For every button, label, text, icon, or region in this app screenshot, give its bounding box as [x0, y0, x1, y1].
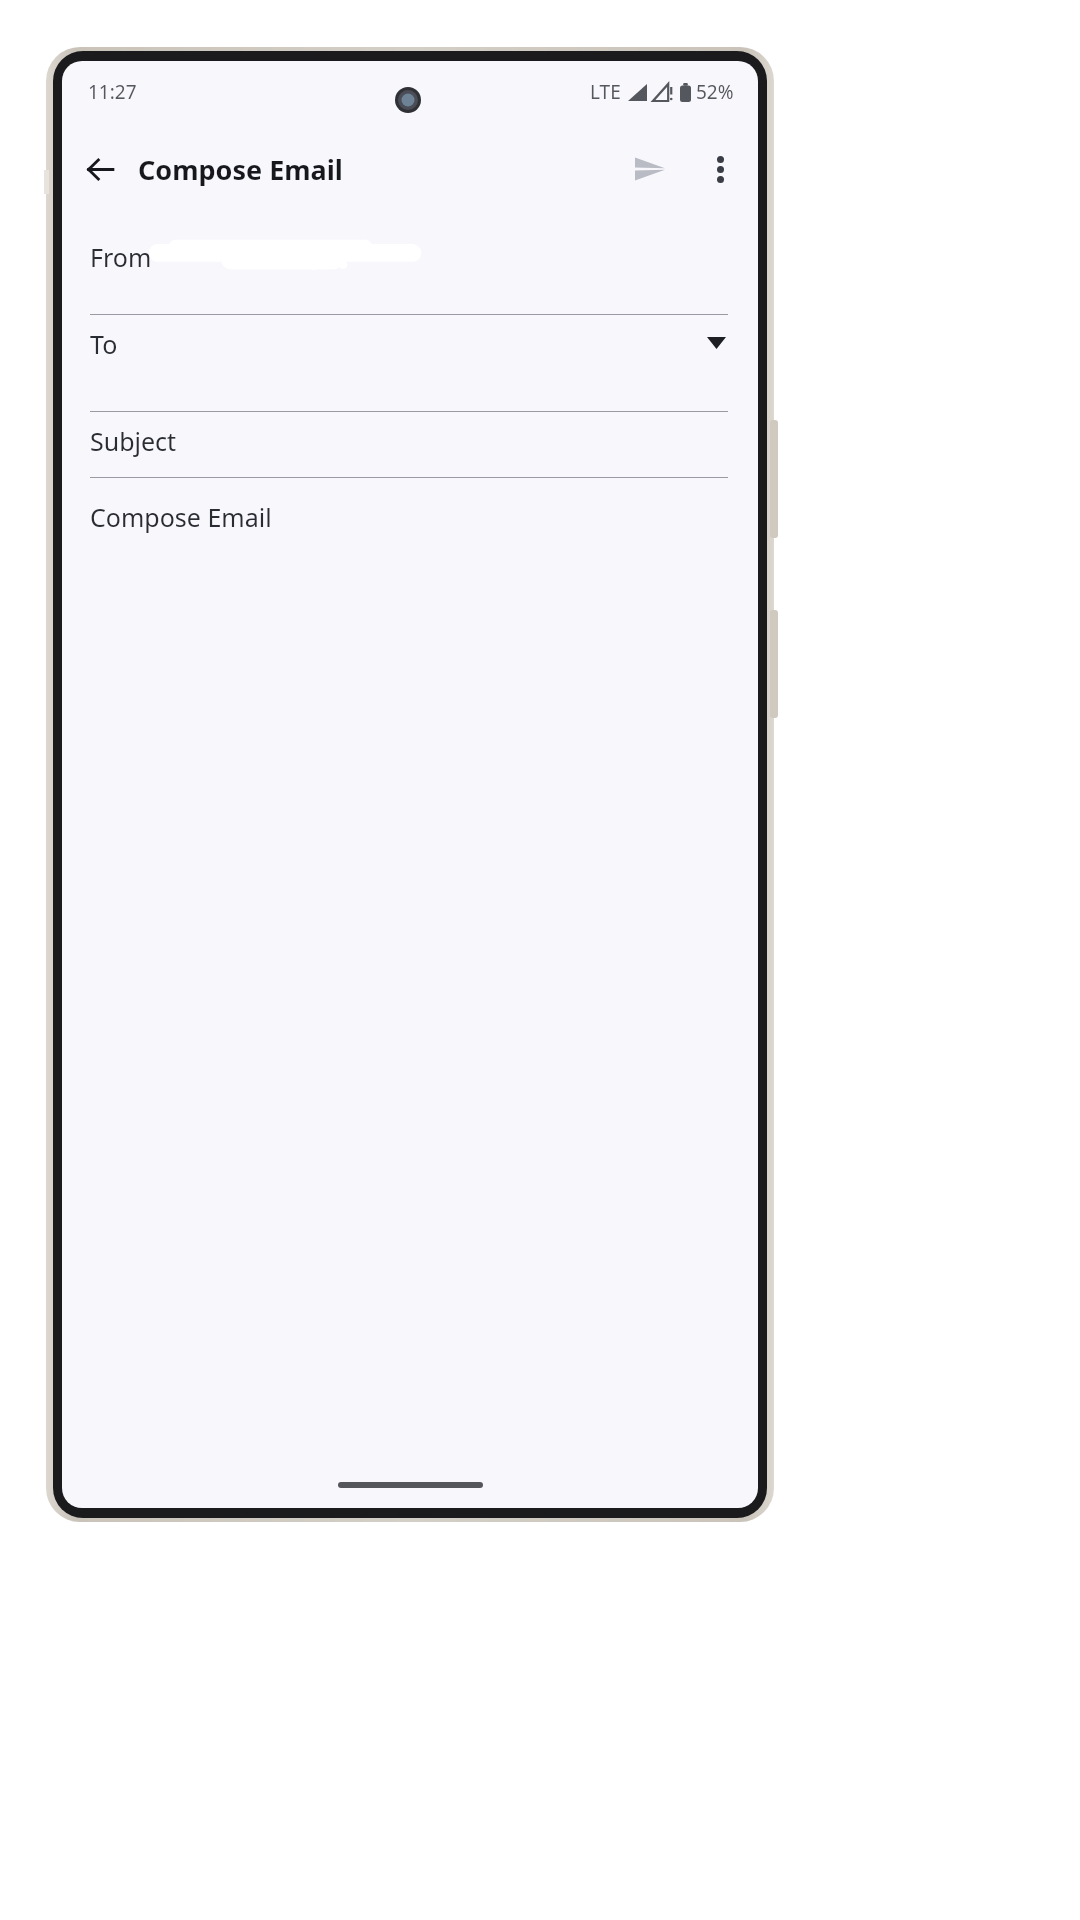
button[interactable]: Subject: [62, 412, 758, 478]
button[interactable]: Expand recipients: [696, 323, 736, 363]
button[interactable]: Send: [622, 141, 678, 197]
button[interactable]: From: [62, 215, 758, 315]
staticText: 52%: [696, 79, 734, 105]
staticText: LTE: [590, 79, 621, 105]
button[interactable]: More options: [692, 141, 748, 197]
button[interactable]: Back: [72, 141, 128, 197]
staticText: Subject: [90, 424, 177, 458]
button[interactable]: Compose Email: [62, 478, 758, 1470]
staticText: From: [90, 240, 152, 274]
staticText: Compose Email: [138, 151, 343, 188]
staticText: Compose Email: [90, 500, 272, 534]
staticText: 11:27: [88, 79, 137, 105]
button[interactable]: To: [62, 315, 758, 412]
staticText: To: [90, 327, 118, 361]
